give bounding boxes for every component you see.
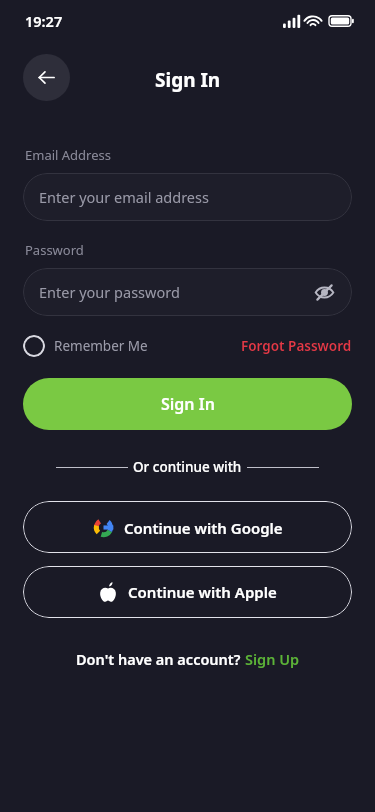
staticText: Enter your email address — [39, 187, 209, 207]
button[interactable]: Show password — [312, 280, 336, 304]
staticText: Continue with Google — [124, 518, 283, 538]
staticText: Continue with Apple — [128, 582, 277, 602]
staticText: Password — [25, 241, 84, 259]
button[interactable]: Enter your email address — [23, 173, 352, 221]
button[interactable]: Sign In — [23, 378, 352, 430]
staticText: Enter your password — [39, 282, 180, 302]
button[interactable]: Back — [23, 54, 70, 101]
button[interactable]: Continue with Apple — [23, 566, 352, 618]
button[interactable]: Sign Up — [245, 649, 300, 669]
button[interactable]: Remember Me — [23, 335, 148, 357]
staticText: Sign In — [155, 67, 221, 93]
button[interactable]: Forgot Password — [241, 337, 352, 355]
staticText: 19:27 — [25, 11, 63, 31]
staticText: Email Address — [25, 146, 111, 164]
button[interactable]: Enter your password — [23, 268, 352, 316]
staticText: Sign In — [161, 393, 215, 415]
button[interactable]: Continue with Google — [23, 501, 352, 553]
staticText: Remember Me — [54, 337, 148, 355]
staticText: Don't have an account? — [76, 649, 245, 669]
staticText: Or continue with — [133, 458, 242, 476]
